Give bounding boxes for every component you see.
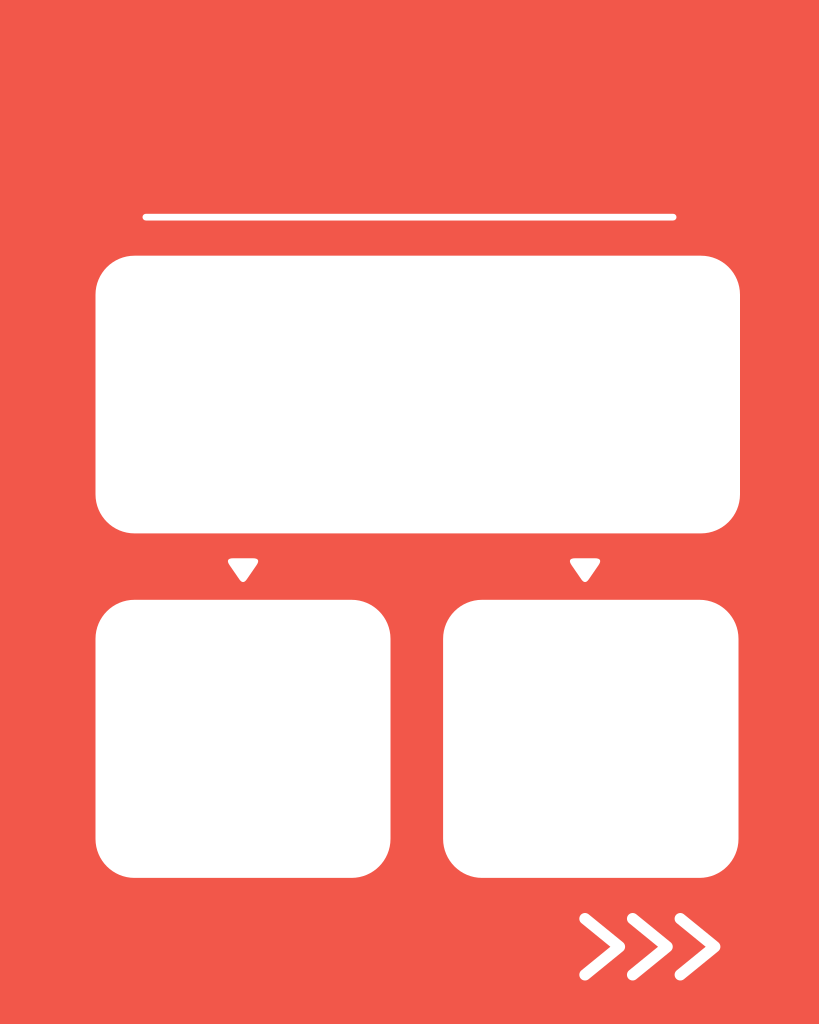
button[interactable]: Continue <box>579 913 720 980</box>
button[interactable]: First detail <box>95 600 390 878</box>
button[interactable]: Title <box>142 214 676 220</box>
button[interactable]: Second detail <box>443 600 738 878</box>
button[interactable]: Overview <box>95 256 740 533</box>
